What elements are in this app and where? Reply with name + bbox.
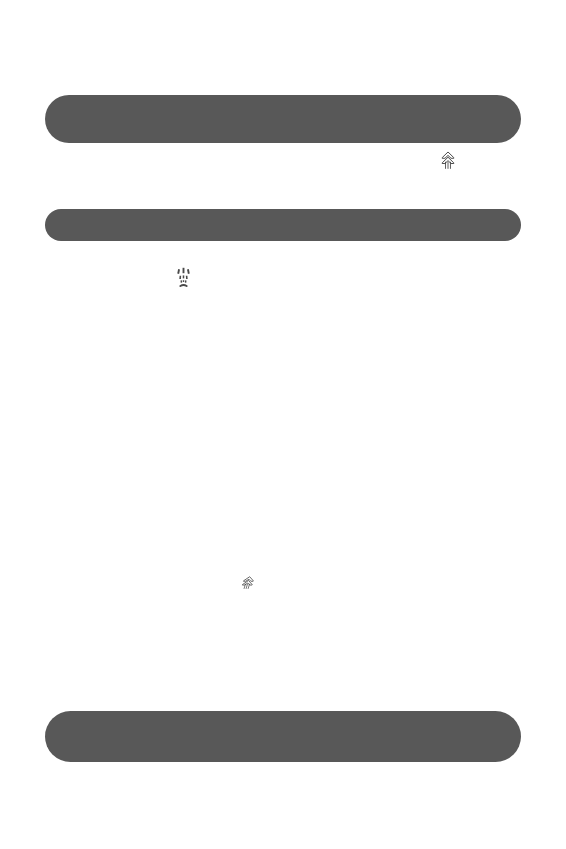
button[interactable]: Launch [241,576,251,589]
button[interactable]: Highlight [177,267,190,287]
button[interactable]: Subtitle [45,209,521,241]
button[interactable]: Title [45,95,521,143]
button[interactable]: Launch [442,151,454,169]
button[interactable]: Continue [45,711,521,762]
